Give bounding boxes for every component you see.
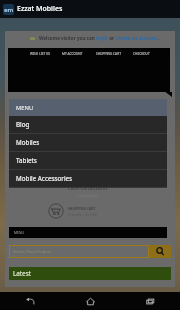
button[interactable]: Tablets xyxy=(9,152,167,170)
staticText: create an account xyxy=(116,35,158,41)
staticText: SHOPPING CART xyxy=(96,52,121,56)
button[interactable]: Latest xyxy=(9,267,171,280)
staticText: Coming Soon xyxy=(77,193,99,198)
staticText: Tablets xyxy=(16,156,37,165)
button[interactable]: Recent apps xyxy=(120,292,180,310)
staticText: MENU xyxy=(14,230,25,235)
button[interactable]: SHOPPING CART xyxy=(48,203,97,219)
staticText: Mobile Accessories xyxy=(16,174,73,183)
button[interactable]: CHECKOUT xyxy=(133,52,150,56)
staticText: Latest xyxy=(13,269,31,278)
button[interactable]: Search Your Product xyxy=(9,245,149,258)
button[interactable]: WISH LIST (0) xyxy=(30,52,50,56)
staticText: MENU xyxy=(16,104,34,112)
staticText: Mobiles xyxy=(16,138,40,147)
staticText: CHECKOUT xyxy=(133,52,150,56)
button[interactable]: Search xyxy=(149,245,171,258)
staticText: CASH ON DELIVERY xyxy=(68,186,108,192)
button[interactable]: Back xyxy=(0,292,60,310)
staticText: WISH LIST (0) xyxy=(30,52,50,56)
staticText: 0 item(s) - Rs.0.00 xyxy=(68,212,97,217)
button[interactable]: SHOPPING CART xyxy=(96,52,121,56)
staticText: em xyxy=(4,6,14,14)
button[interactable]: Home xyxy=(60,292,120,310)
staticText: . xyxy=(158,35,160,41)
button[interactable]: Blog xyxy=(9,116,167,134)
button[interactable]: MENU xyxy=(9,227,167,238)
staticText: or xyxy=(108,35,116,41)
staticText: Blog xyxy=(16,120,30,129)
button[interactable]: MY ACCOUNT xyxy=(62,52,83,56)
staticText: Ezzat Mobiles xyxy=(17,4,63,14)
button[interactable]: Mobiles xyxy=(9,134,167,152)
staticText: Welcome visitor you can xyxy=(39,35,96,41)
staticText: login xyxy=(96,35,108,41)
staticText: SHOPPING CART xyxy=(68,206,96,211)
staticText: Search Your Product xyxy=(13,249,52,254)
staticText: MY ACCOUNT xyxy=(62,52,83,56)
button[interactable]: Mobile Accessories xyxy=(9,170,167,188)
